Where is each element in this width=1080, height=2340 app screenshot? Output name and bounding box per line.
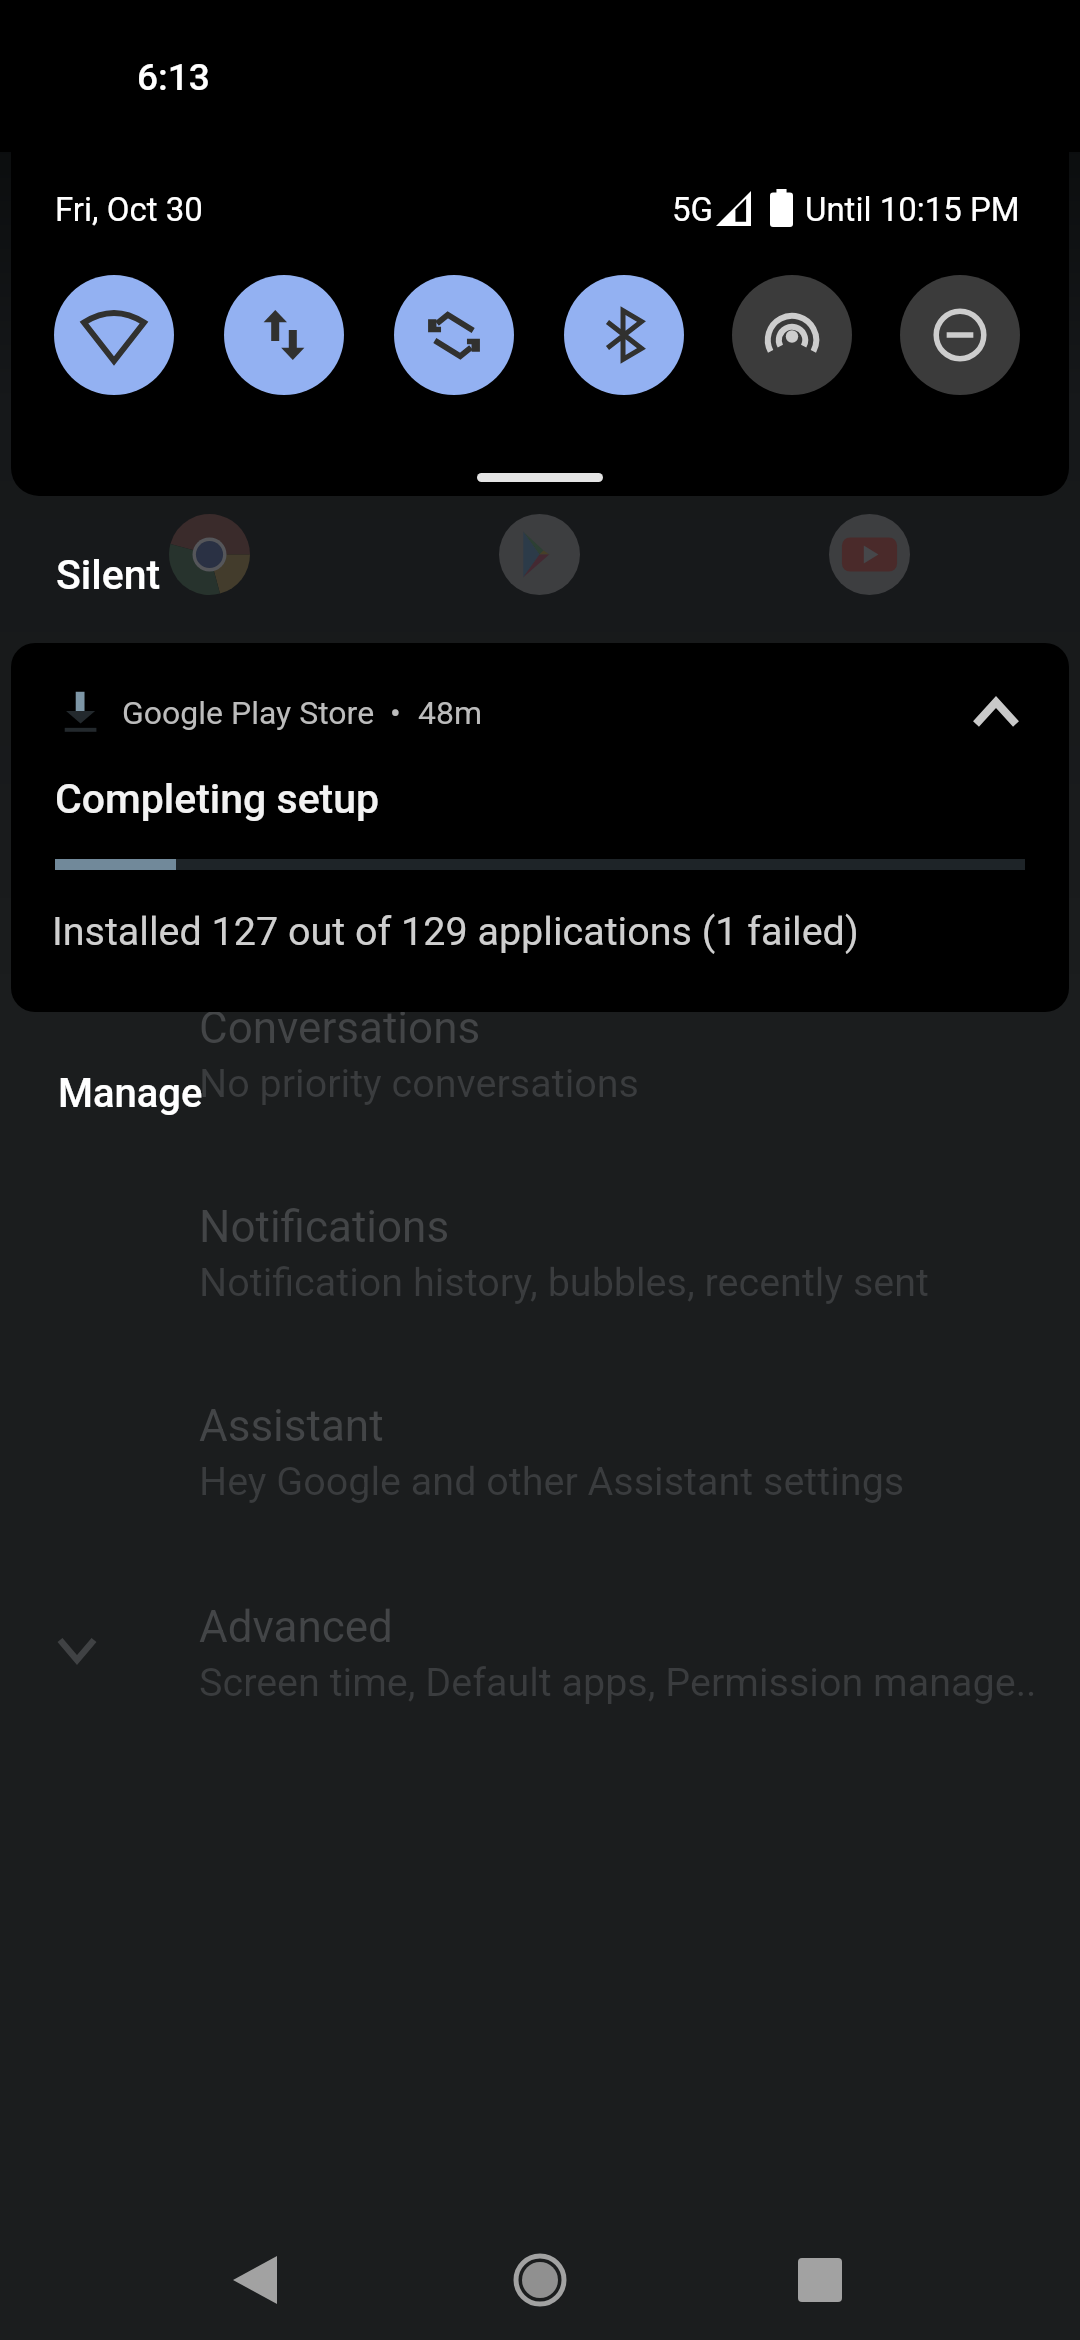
button[interactable]: Auto-rotate xyxy=(394,275,514,395)
staticText: Screen time, Default apps, Permission ma… xyxy=(199,1659,1037,1705)
staticText: • xyxy=(390,694,401,732)
staticText: 5G xyxy=(672,190,714,229)
button[interactable]: Recent apps xyxy=(765,2225,875,2335)
button[interactable] xyxy=(34,524,184,596)
button[interactable]: Nearby Share xyxy=(732,275,852,395)
staticText: Silent xyxy=(56,551,161,599)
staticText: Notification history, bubbles, recently … xyxy=(199,1259,929,1305)
button[interactable]: Mobile data xyxy=(224,275,344,395)
button[interactable]: Do Not Disturb xyxy=(900,275,1020,395)
button[interactable] xyxy=(34,1058,226,1130)
staticText: Hey Google and other Assistant settings xyxy=(199,1458,905,1504)
staticText: No priority conversations xyxy=(199,1060,639,1106)
button[interactable]: Collapse notification xyxy=(955,672,1037,754)
staticText: 48m xyxy=(418,694,483,732)
button[interactable]: Expand advanced xyxy=(27,1600,127,1700)
staticText: Until 10:15 PM xyxy=(805,190,1020,229)
staticText: 6:13 xyxy=(137,56,210,99)
button[interactable]: Bluetooth xyxy=(564,275,684,395)
button[interactable]: Home xyxy=(485,2225,595,2335)
staticText: Fri, Oct 30 xyxy=(55,190,203,229)
staticText: Manage xyxy=(58,1070,203,1117)
staticText: Completing setup xyxy=(55,775,380,823)
button[interactable]: Wi-Fi xyxy=(54,275,174,395)
staticText: Conversations xyxy=(199,1002,481,1054)
staticText: Google Play Store xyxy=(122,694,375,732)
staticText: Notifications xyxy=(199,1201,450,1253)
staticText: Assistant xyxy=(199,1400,384,1452)
button[interactable]: Back xyxy=(200,2225,310,2335)
staticText: Installed 127 out of 129 applications (1… xyxy=(52,908,859,954)
button[interactable] xyxy=(11,643,1069,1012)
staticText: Advanced xyxy=(199,1601,393,1653)
